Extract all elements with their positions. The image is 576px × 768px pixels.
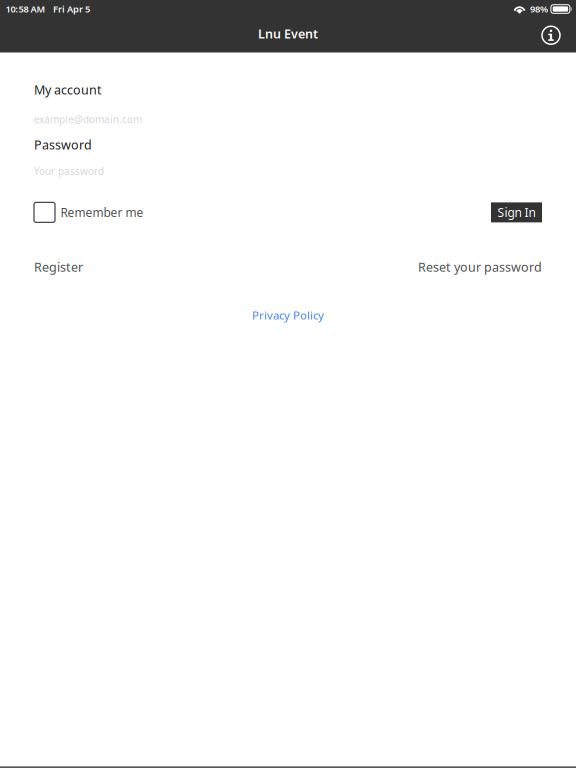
staticText: Register: [34, 258, 83, 275]
staticText: 98%: [530, 3, 548, 15]
staticText: Privacy Policy: [252, 307, 324, 323]
staticText: My account: [34, 81, 102, 98]
staticText: Password: [34, 136, 92, 153]
staticText: example@domain.com: [34, 113, 142, 126]
button[interactable]: Remember me: [34, 202, 143, 222]
staticText: Fri Apr 5: [53, 3, 90, 15]
staticText: Your password: [34, 164, 104, 178]
staticText: 10:58 AM: [5, 3, 45, 15]
button[interactable]: Sign In: [491, 202, 542, 222]
staticText: Lnu Event: [258, 25, 318, 42]
staticText: Sign In: [497, 204, 535, 220]
button[interactable]: Register: [34, 258, 83, 275]
button[interactable]: Reset your password: [418, 258, 542, 275]
staticText: Reset your password: [418, 258, 542, 275]
staticText: Remember me: [60, 204, 143, 220]
button[interactable]: Information: [535, 19, 567, 51]
button[interactable]: Privacy Policy: [252, 307, 324, 323]
